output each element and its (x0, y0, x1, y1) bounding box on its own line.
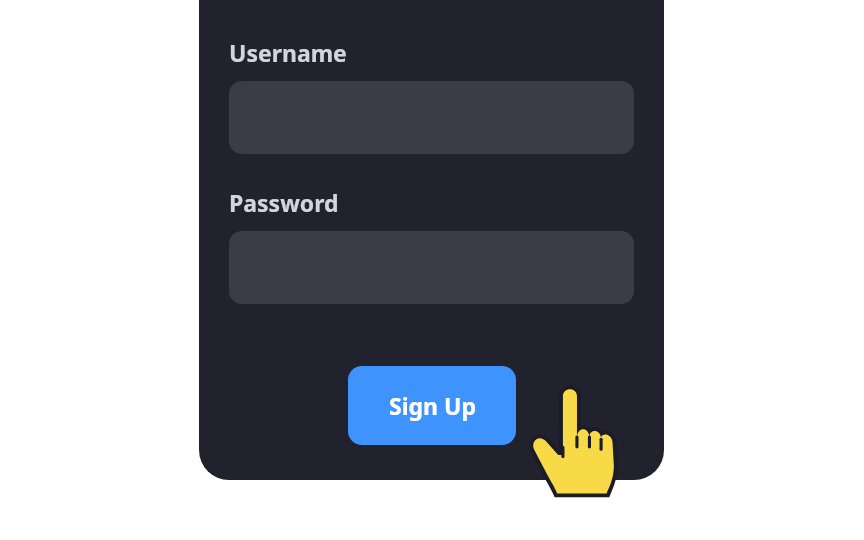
staticText: Username (229, 37, 347, 68)
staticText: Sign Up (389, 390, 476, 421)
staticText: Password (229, 187, 339, 218)
button[interactable]: Sign Up (348, 366, 516, 445)
